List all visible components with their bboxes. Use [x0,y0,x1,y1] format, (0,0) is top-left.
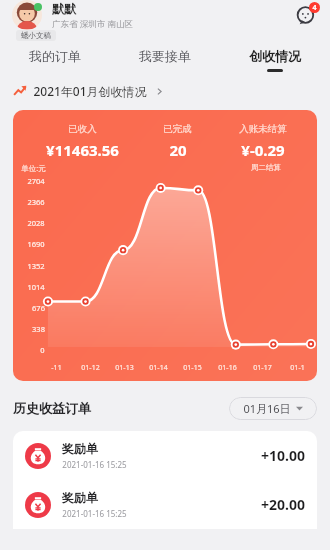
staticText: 我要接单 [139,48,191,64]
staticText: 2021-01-16 15:25 [62,508,127,519]
staticText: ¥-0.29 [241,140,285,160]
button[interactable]: 我要接单 [110,42,220,78]
staticText: 676 [32,303,45,313]
staticText: 01月16日 [243,401,291,416]
staticText: 奖励单 [62,490,98,505]
staticText: 01-17 [253,363,272,373]
staticText: 广东省 深圳市 南山区 [52,18,133,30]
button[interactable]: 创收情况 [220,42,330,78]
staticText: 2021-01-16 15:25 [62,459,127,470]
staticText: +10.00 [261,446,305,465]
staticText: 入账未结算 [239,123,287,135]
staticText: 01-14 [149,363,168,373]
staticText: 1352 [27,261,45,271]
staticText: 单位:元 [21,163,46,173]
button[interactable]: 01月16日 [229,397,317,420]
staticText: 我的订单 [29,48,81,64]
staticText: 0 [40,345,45,355]
staticText: 历史收益订单 [13,400,91,416]
button[interactable]: Avatar [12,0,42,30]
staticText: 338 [32,324,45,334]
button[interactable]: 我的订单 [0,42,110,78]
staticText: 蟋小文稿 [21,31,51,40]
staticText: -11 [51,363,62,373]
staticText: 周二结算 [251,163,281,172]
staticText: 2021年01月创收情况 [33,83,147,99]
staticText: 1014 [27,282,45,292]
staticText: 已完成 [163,123,192,135]
button[interactable]: 2021年01月创收情况 [13,78,330,104]
staticText: 2028 [27,218,45,228]
staticText: 01-15 [183,363,202,373]
staticText: 2704 [27,176,45,186]
staticText: 1690 [27,239,45,249]
staticText: 创收情况 [249,48,301,64]
staticText: 01-1 [290,363,305,373]
staticText: 01-13 [115,363,134,373]
button[interactable]: Messages [294,2,320,28]
staticText: 4 [312,3,317,13]
staticText: 20 [169,140,187,160]
staticText: 01-16 [218,363,237,373]
staticText: 默默 [52,1,76,16]
button[interactable]: 奖励单 [13,431,317,480]
staticText: +20.00 [261,495,305,514]
staticText: 奖励单 [62,441,98,456]
button[interactable]: 奖励单 [13,480,317,529]
staticText: 2366 [27,197,45,207]
staticText: 已收入 [68,123,97,135]
staticText: ¥11463.56 [46,140,119,160]
staticText: 01-12 [81,363,100,373]
